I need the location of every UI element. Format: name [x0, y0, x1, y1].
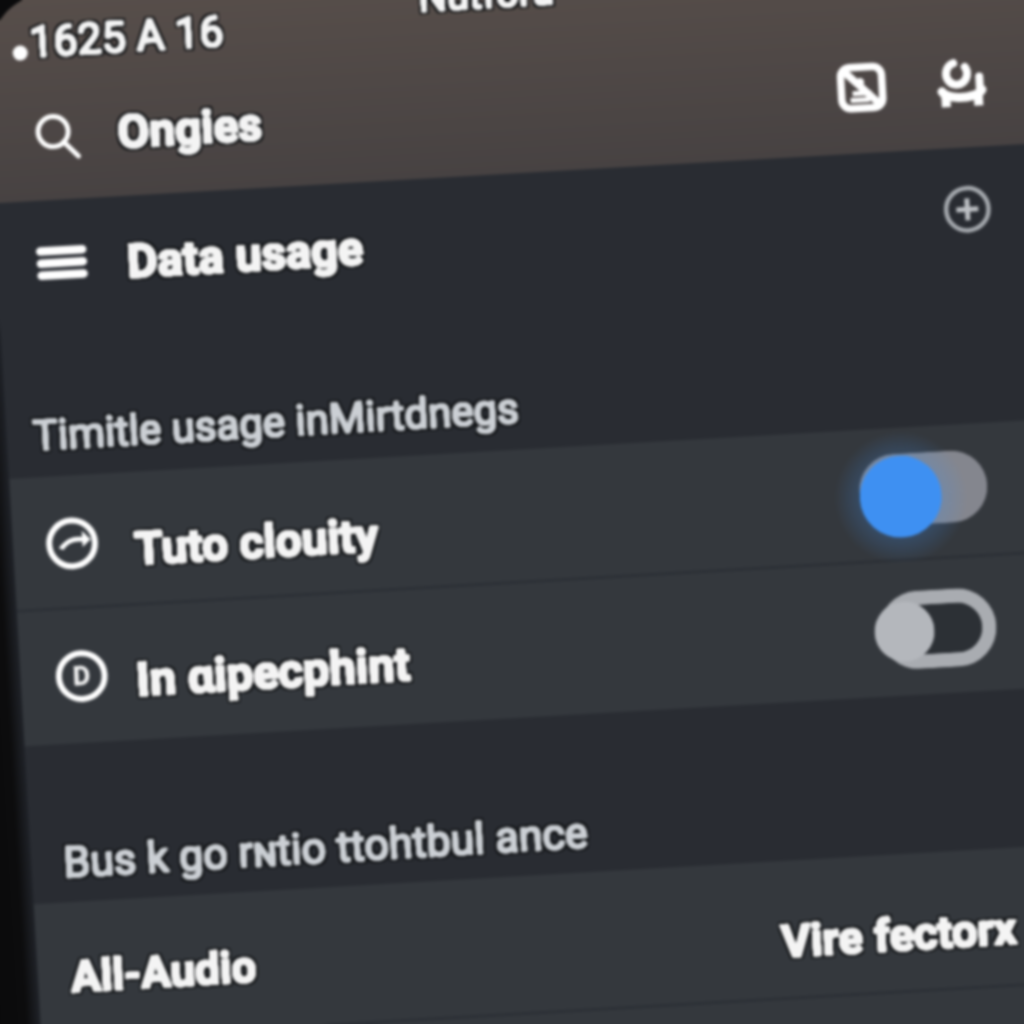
staticText: Tuto clouity [134, 508, 381, 576]
staticText: Vire fectorx [777, 905, 1015, 971]
staticText: Data usage [125, 221, 365, 290]
staticText: Bus k go rɴtio ttohtbul ance [61, 807, 588, 887]
staticText: Bus k go rɴtio ttohtbul ance [63, 806, 590, 886]
staticText: Timitle usage inMirtdnegs [32, 386, 521, 463]
staticText: Bus k go rɴtio ttohtbul ance [62, 810, 589, 890]
staticText: Bus k go rɴtio ttohtbul ance [59, 807, 586, 887]
staticText: Vire fectorx [781, 902, 1019, 968]
staticText: All-Audio [69, 941, 257, 1004]
staticText: Bus k go rɴtio ttohtbul ance [62, 808, 589, 888]
staticText: Timitle usage inMirtdnegs [31, 383, 520, 460]
staticText: Data usage [128, 220, 368, 289]
staticText: All-Audio [67, 941, 255, 1003]
staticText: Nutforu [420, 0, 559, 24]
staticText: Tuto clouity [130, 508, 377, 576]
staticText: Bus k go rɴtio ttohtbul ance [63, 808, 590, 888]
staticText: Nutforu [418, 0, 556, 20]
staticText: Ongies [117, 98, 265, 160]
staticText: Tuto clouity [130, 505, 376, 573]
staticText: Nutforu [418, 0, 556, 21]
staticText: 1625 A 16 [25, 6, 222, 67]
staticText: Ongies [117, 97, 265, 159]
staticText: Vire fectorx [779, 901, 1017, 967]
staticText: Ongies [113, 97, 261, 159]
staticText: Timitle usage inMirtdnegs [32, 382, 521, 459]
staticText: In αipecphint [134, 635, 412, 706]
staticText: In αipecphint [135, 639, 412, 710]
staticText: Ongies [116, 100, 264, 162]
staticText: Ongies [116, 96, 264, 158]
staticText: Nutforu [417, 0, 556, 24]
staticText: In αipecphint [134, 636, 412, 707]
button[interactable]: Search [29, 108, 85, 164]
staticText: Tuto clouity [132, 509, 379, 577]
staticText: Ongies [119, 100, 267, 162]
staticText: Vire fectorx [780, 905, 1018, 971]
staticText: In αipecphint [133, 637, 411, 708]
staticText: Timitle usage inMirtdnegs [31, 384, 520, 461]
staticText: Ongies [116, 97, 264, 159]
staticText: 1625 A 16 [28, 5, 225, 66]
staticText: Vire fectorx [782, 898, 1021, 965]
staticText: Vire fectorx [783, 904, 1021, 971]
staticText: Bus k go rɴtio ttohtbul ance [62, 806, 589, 886]
staticText: All-Audio [72, 940, 261, 1003]
staticText: 1625 A 16 [27, 6, 224, 67]
staticText: Vire fectorx [779, 903, 1017, 969]
button[interactable] [0, 838, 1024, 1024]
staticText: Bus k go rɴtio ttohtbul ance [65, 810, 592, 890]
staticText: Vire fectorx [780, 902, 1018, 968]
staticText: Data usage [124, 220, 364, 289]
staticText: Timitle usage inMirtdnegs [34, 380, 523, 457]
button[interactable]: Add [942, 184, 993, 235]
staticText: All-Audio [68, 939, 257, 1002]
staticText: 1625 A 16 [28, 7, 225, 68]
staticText: 1625 A 16 [27, 3, 225, 64]
staticText: 1625 A 16 [30, 3, 228, 64]
staticText: Nutforu [414, 0, 552, 19]
staticText: Timitle usage inMirtdnegs [32, 384, 521, 461]
staticText: Ongies [113, 100, 261, 162]
staticText: In αipecphint [133, 636, 411, 707]
staticText: In αipecphint [138, 639, 415, 710]
staticText: Timitle usage inMirtdnegs [32, 383, 521, 460]
staticText: Ongies [115, 98, 263, 160]
staticText: All-Audio [66, 938, 255, 1000]
button[interactable]: Toggle on [857, 449, 990, 542]
staticText: In αipecphint [137, 633, 415, 704]
staticText: Tuto clouity [134, 509, 381, 577]
staticText: Ongies [117, 96, 265, 158]
staticText: Data usage [122, 223, 362, 292]
staticText: All-Audio [69, 937, 258, 1000]
staticText: All-Audio [69, 939, 258, 1002]
staticText: Tuto clouity [132, 507, 379, 575]
staticText: Nutforu [417, 0, 555, 22]
staticText: Nutforu [416, 0, 554, 21]
staticText: All-Audio [72, 937, 261, 1000]
staticText: Ongies [116, 94, 264, 156]
staticText: 1625 A 16 [24, 3, 222, 64]
staticText: Timitle usage inMirtdnegs [28, 381, 517, 458]
staticText: Vire fectorx [780, 901, 1018, 967]
staticText: Vire fectorx [783, 901, 1021, 968]
button[interactable]: Menu [38, 238, 86, 287]
staticText: Nutforu [416, 0, 554, 23]
staticText: Timitle usage inMirtdnegs [30, 384, 519, 461]
button[interactable]: Scan code [834, 60, 890, 116]
button[interactable]: Toggle off [872, 586, 999, 673]
staticText: Ongies [115, 97, 263, 159]
button[interactable]: Account [935, 57, 991, 113]
staticText: Tuto clouity [133, 511, 380, 579]
staticText: In αipecphint [131, 636, 409, 707]
staticText: Data usage [122, 217, 362, 286]
staticText: Data usage [125, 220, 365, 289]
staticText: Data usage [125, 217, 365, 286]
staticText: All-Audio [70, 940, 259, 1003]
staticText: Vire fectorx [779, 899, 1018, 965]
staticText: Timitle usage inMirtdnegs [30, 383, 519, 460]
staticText: In αipecphint [135, 635, 413, 706]
staticText: All-Audio [71, 941, 259, 1004]
staticText: Tuto clouity [133, 508, 380, 576]
